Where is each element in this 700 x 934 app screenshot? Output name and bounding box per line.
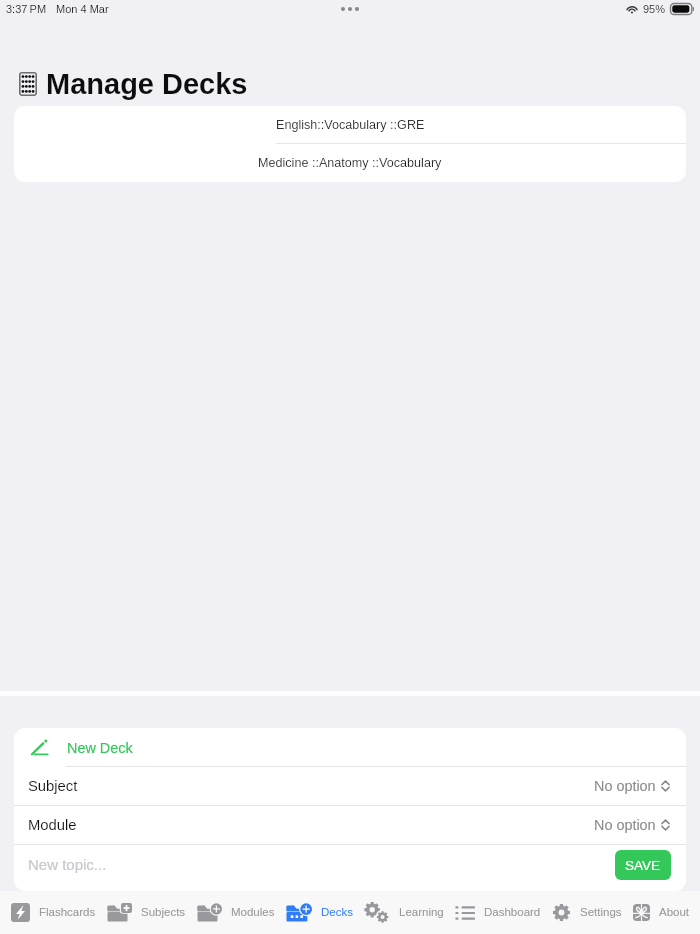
staticText: Manage Decks [46,68,248,100]
button[interactable]: Modules [197,891,275,934]
staticText: Modules [231,906,275,919]
button[interactable]: Flashcards [11,891,96,934]
staticText: Settings [580,906,622,919]
staticText: 95% [643,3,666,15]
staticText: New Deck [67,740,133,756]
staticText: About [659,906,690,919]
staticText: English::Vocabulary ::GRE [276,118,425,132]
button[interactable]: About [633,891,690,934]
staticText: Medicine ::Anatomy ::Vocabulary [258,156,442,170]
button[interactable]: Learning [364,891,444,934]
button[interactable]: Subjects [107,891,186,934]
staticText: Flashcards [39,906,96,919]
button[interactable]: Medicine ::Anatomy ::Vocabulary [14,144,686,182]
button[interactable]: Dashboard [455,891,541,934]
staticText: Dashboard [484,906,541,919]
staticText: Decks [321,906,353,919]
button[interactable]: Settings [552,891,622,934]
button[interactable]: Decks [286,891,353,934]
staticText: 3:37 PM [6,3,47,15]
button[interactable]: SAVE [615,850,671,880]
staticText: New topic... [28,856,107,873]
staticText: Subjects [141,906,186,919]
button[interactable]: Module [14,806,686,844]
staticText: No option [594,778,656,794]
staticText: Learning [399,906,444,919]
button[interactable]: English::Vocabulary ::GRE [14,106,686,144]
button[interactable]: Edit deck name [14,728,686,767]
other: Decks [19,72,37,96]
staticText: SAVE [625,858,661,873]
staticText: Subject [28,778,78,795]
staticText: Module [28,817,77,834]
other: Edit deck name [30,739,50,756]
staticText: No option [594,817,656,833]
button[interactable]: Subject [14,767,686,805]
staticText: Mon 4 Mar [56,3,109,15]
